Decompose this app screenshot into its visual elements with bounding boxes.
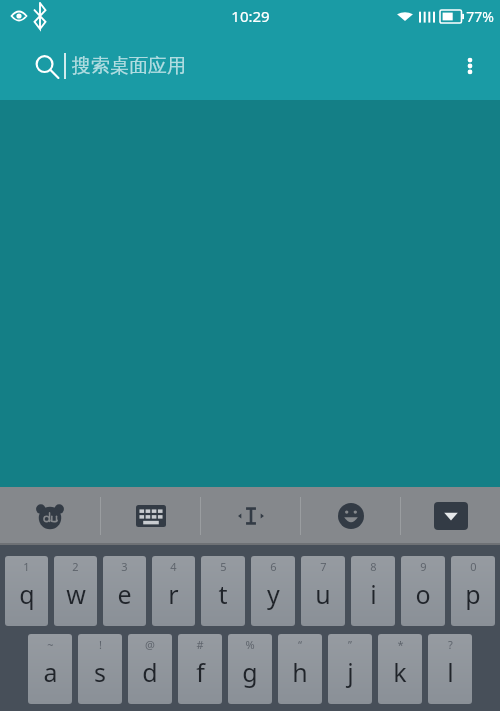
button[interactable]: 5: [201, 556, 245, 626]
staticText: 9: [420, 559, 427, 574]
staticText: t: [218, 577, 228, 611]
button[interactable]: 7: [301, 556, 345, 626]
staticText: #: [196, 637, 204, 652]
button[interactable]: “: [278, 634, 322, 704]
button[interactable]: 3: [103, 556, 146, 626]
other: Search: [34, 54, 58, 78]
staticText: 8: [370, 559, 377, 574]
staticText: a: [43, 655, 58, 689]
staticText: *: [397, 637, 404, 652]
staticText: u: [315, 577, 331, 611]
button[interactable]: %: [228, 634, 272, 704]
staticText: o: [415, 577, 431, 611]
staticText: 1: [23, 559, 30, 574]
staticText: 5: [220, 559, 227, 574]
staticText: d: [142, 655, 158, 689]
button[interactable]: 0: [451, 556, 495, 626]
staticText: %: [245, 637, 255, 652]
button[interactable]: ?: [428, 634, 472, 704]
staticText: @: [145, 637, 155, 652]
button[interactable]: !: [78, 634, 122, 704]
staticText: 4: [170, 559, 177, 574]
button[interactable]: 8: [351, 556, 395, 626]
staticText: q: [19, 577, 35, 611]
staticText: l: [447, 655, 454, 689]
staticText: ?: [448, 637, 453, 652]
button[interactable]: Keyboard layout: [101, 487, 200, 545]
button[interactable]: 4: [152, 556, 195, 626]
staticText: 77%: [466, 7, 494, 26]
staticText: r: [168, 577, 179, 611]
staticText: s: [94, 655, 106, 689]
staticText: 7: [320, 559, 327, 574]
button[interactable]: Search: [34, 32, 448, 100]
button[interactable]: #: [178, 634, 222, 704]
staticText: e: [117, 577, 132, 611]
button[interactable]: 9: [401, 556, 445, 626]
button[interactable]: ”: [328, 634, 372, 704]
staticText: 0: [470, 559, 477, 574]
button[interactable]: *: [378, 634, 422, 704]
button[interactable]: More options: [448, 32, 492, 100]
staticText: ~: [47, 637, 54, 652]
staticText: i: [370, 577, 377, 611]
button[interactable]: Hide keyboard: [401, 487, 500, 545]
staticText: 搜索桌面应用: [72, 54, 186, 78]
staticText: “: [298, 637, 302, 652]
staticText: ”: [348, 637, 352, 652]
staticText: f: [196, 655, 205, 689]
staticText: h: [292, 655, 308, 689]
button[interactable]: Emoji: [301, 487, 400, 545]
button[interactable]: @: [128, 634, 172, 704]
button[interactable]: Input method logo: [0, 487, 100, 545]
staticText: p: [465, 577, 481, 611]
button[interactable]: 6: [251, 556, 295, 626]
staticText: y: [267, 577, 280, 611]
button[interactable]: 2: [54, 556, 97, 626]
button[interactable]: 1: [5, 556, 48, 626]
staticText: j: [347, 655, 354, 689]
button[interactable]: ~: [28, 634, 72, 704]
staticText: 3: [121, 559, 128, 574]
staticText: w: [66, 577, 86, 611]
staticText: g: [242, 655, 258, 689]
staticText: 10:29: [231, 6, 270, 26]
button[interactable]: Text cursor: [201, 487, 300, 545]
staticText: k: [393, 655, 407, 689]
staticText: 2: [72, 559, 79, 574]
staticText: 6: [270, 559, 277, 574]
staticText: !: [99, 637, 102, 652]
